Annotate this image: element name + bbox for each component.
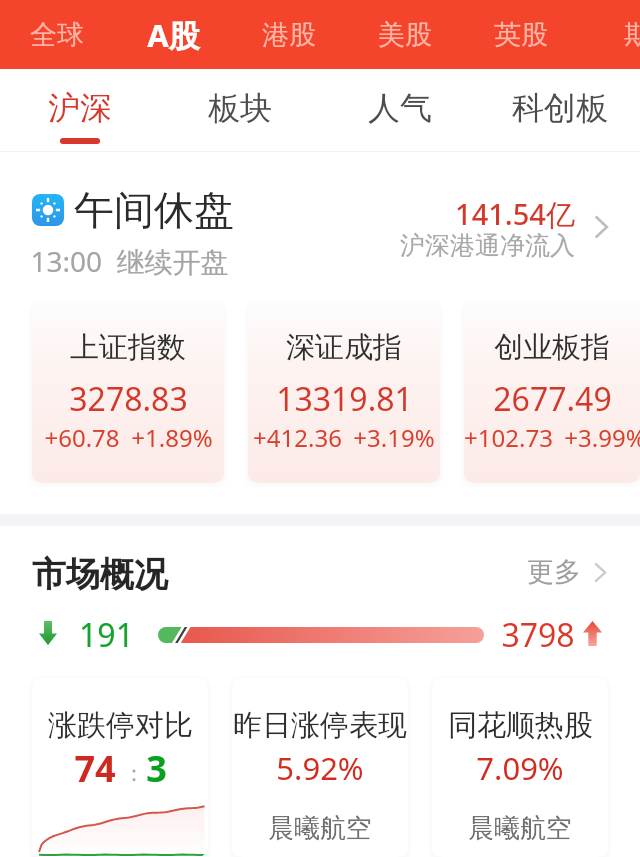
staticText: 市场概况 (32, 553, 168, 596)
staticText: 2677.49 (493, 377, 612, 421)
staticText: 午间休盘 (74, 185, 234, 235)
button[interactable]: 科创板 (480, 69, 640, 152)
staticText: 更多 (527, 555, 581, 589)
button[interactable]: 美股 (347, 0, 463, 69)
button[interactable]: 沪深 (0, 69, 160, 152)
staticText: 创业板指 (494, 329, 610, 366)
staticText: 13:00 继续开盘 (30, 242, 229, 280)
staticText: 5.92% (276, 747, 364, 789)
button[interactable]: 期 (579, 0, 640, 69)
staticText: 3278.83 (69, 377, 188, 421)
staticText: 全球 (30, 18, 84, 52)
staticText: 科创板 (512, 88, 608, 128)
staticText: 3798 (501, 613, 575, 653)
staticText: 沪深港通净流入 (400, 230, 575, 261)
staticText: +3.19% (353, 421, 435, 454)
staticText: 昨日涨停表现 (233, 707, 407, 744)
staticText: +102.73 (464, 421, 553, 454)
button[interactable]: 港股 (231, 0, 347, 69)
staticText: 英股 (494, 18, 548, 52)
staticText: 期 (624, 18, 640, 52)
staticText: 沪深 (48, 88, 112, 128)
button[interactable]: A股 (115, 0, 231, 69)
button[interactable]: 同花顺热股 (432, 678, 608, 857)
staticText: 13319.81 (276, 377, 413, 421)
button[interactable]: 涨跌停对比 (32, 678, 208, 857)
button[interactable]: 昨日涨停表现 (232, 678, 408, 857)
staticText: 上证指数 (70, 329, 186, 366)
button[interactable]: 更多 (527, 554, 606, 588)
staticText: 人气 (368, 88, 432, 128)
button[interactable]: 创业板指 (464, 302, 640, 483)
staticText: 晨曦航空 (268, 812, 372, 845)
staticText: 141.54亿 (455, 194, 575, 234)
staticText: 3 (146, 744, 167, 793)
button[interactable]: 板块 (160, 69, 320, 152)
button[interactable]: 深证成指 (248, 302, 440, 483)
button[interactable]: 全球 (0, 0, 115, 69)
staticText: 港股 (262, 18, 316, 52)
staticText: 74 (74, 744, 116, 793)
staticText: 板块 (208, 88, 272, 128)
staticText: ： (123, 760, 145, 788)
button[interactable]: 上证指数 (32, 302, 224, 483)
button[interactable]: 午间休盘 (0, 152, 640, 302)
staticText: A股 (147, 14, 200, 56)
staticText: +3.99% (564, 421, 640, 454)
staticText: +60.78 (44, 421, 120, 454)
button[interactable]: 英股 (463, 0, 579, 69)
staticText: +412.36 (253, 421, 342, 454)
staticText: 晨曦航空 (468, 812, 572, 845)
staticText: 191 (79, 613, 134, 653)
staticText: 同花顺热股 (448, 707, 593, 744)
button[interactable]: 详情 (586, 212, 616, 242)
button[interactable]: 人气 (320, 69, 480, 152)
staticText: 涨跌停对比 (48, 707, 193, 744)
staticText: 7.09% (476, 747, 564, 789)
staticText: 美股 (378, 18, 432, 52)
staticText: +1.89% (131, 421, 213, 454)
staticText: 深证成指 (286, 329, 402, 366)
